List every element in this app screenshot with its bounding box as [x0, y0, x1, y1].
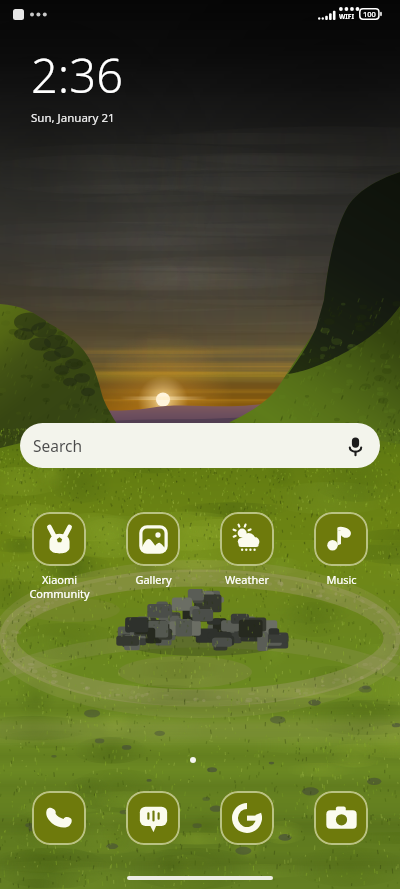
button[interactable]: Google [220, 791, 274, 845]
button[interactable]: Gallery [109, 512, 197, 587]
staticText: WIFI [339, 12, 354, 21]
button[interactable]: Weather [203, 512, 291, 587]
button[interactable]: Messages [126, 791, 180, 845]
button[interactable]: Xiaomi Community [15, 512, 103, 601]
button[interactable]: Search [20, 423, 380, 468]
staticText: Weather [225, 572, 269, 587]
staticText: Gallery [135, 572, 172, 587]
button[interactable]: Phone [32, 791, 86, 845]
staticText: Xiaomi Community [29, 572, 90, 601]
staticText: Search [33, 435, 83, 456]
button[interactable]: Music [297, 512, 385, 587]
staticText: 100 [363, 9, 376, 19]
staticText: Sun, January 21 [31, 110, 115, 126]
staticText: 2:36 [31, 43, 123, 107]
button[interactable]: Voice search [343, 434, 367, 458]
staticText: Music [326, 572, 357, 587]
button[interactable]: Camera [314, 791, 368, 845]
